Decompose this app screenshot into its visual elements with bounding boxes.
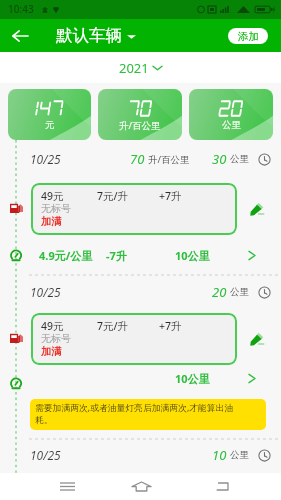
staticText: 10 (212, 446, 227, 464)
staticText: 30 (212, 150, 227, 168)
staticText: 10:43 (8, 2, 34, 16)
staticText: 公里 (230, 449, 249, 461)
staticText: 加满 (41, 215, 62, 228)
button[interactable]: 默认车辆 (56, 25, 136, 46)
other: Distance (9, 377, 23, 391)
staticText: 7元/升 (97, 319, 129, 333)
staticText: 10/25 (30, 151, 61, 167)
staticText: 49元 (41, 319, 64, 333)
staticText: 10/25 (30, 284, 61, 300)
staticText: 10公里 (175, 371, 210, 385)
staticText: 无标号 (41, 332, 71, 345)
staticText: 10/25 (30, 447, 61, 463)
button[interactable]: 2021 (119, 59, 162, 77)
other: Refuel (10, 203, 23, 213)
other: Refuel (10, 333, 23, 343)
staticText: 加满 (41, 345, 62, 358)
other: Distance (9, 249, 23, 263)
staticText: 10公里 (175, 248, 210, 262)
staticText: +7升 (159, 189, 182, 203)
staticText: 默认车辆 (56, 25, 122, 46)
button[interactable]: 49元 (31, 183, 237, 235)
staticText: 公里 (230, 153, 249, 165)
button[interactable]: Recents (52, 473, 82, 500)
staticText: 70 (130, 150, 145, 168)
staticText: 公里 (230, 286, 249, 298)
button[interactable]: 元 (8, 89, 91, 140)
button[interactable]: Edit (247, 199, 267, 219)
button[interactable]: 添加 (228, 28, 268, 44)
button[interactable]: 49元 (31, 313, 237, 365)
button[interactable]: 10/25 (30, 446, 271, 464)
staticText: 需要加满两次,或者油量灯亮后加满两次,才能算出油耗。 (35, 402, 246, 426)
button[interactable]: Back (207, 473, 237, 500)
button[interactable]: 10/25 (30, 150, 271, 168)
staticText: 公里 (222, 119, 241, 131)
button[interactable]: 公里 (189, 89, 273, 140)
button[interactable]: Edit (247, 329, 267, 349)
button[interactable]: Back (8, 24, 32, 48)
staticText: -7升 (106, 248, 127, 262)
button[interactable]: 10公里 (175, 248, 256, 262)
staticText: 升/百公里 (148, 153, 190, 166)
staticText: 49元 (41, 189, 64, 203)
staticText: +7升 (159, 319, 182, 333)
button[interactable]: 升/百公里 (98, 89, 182, 140)
staticText: 升/百公里 (119, 119, 161, 132)
staticText: 元 (45, 119, 55, 131)
staticText: 无标号 (41, 202, 71, 215)
button[interactable]: 10/25 (30, 283, 271, 301)
staticText: 添加 (238, 30, 259, 43)
button[interactable]: 10公里 (175, 371, 256, 385)
staticText: 4.9元/公里 (39, 248, 93, 262)
button[interactable]: Home (126, 473, 156, 500)
staticText: 20 (212, 283, 227, 301)
staticText: 7元/升 (97, 189, 129, 203)
staticText: 2021 (119, 59, 149, 77)
